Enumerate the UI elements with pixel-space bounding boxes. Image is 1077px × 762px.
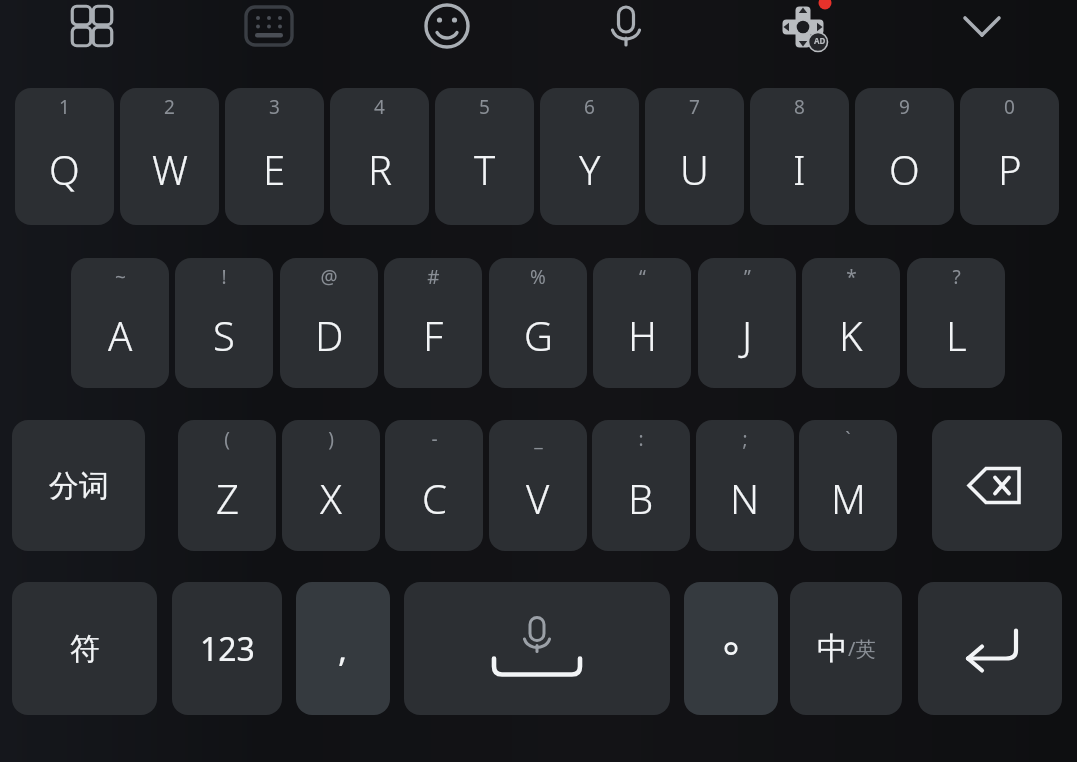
staticText: 5: [479, 94, 490, 120]
button[interactable]: ~: [71, 258, 169, 388]
staticText: Z: [216, 471, 239, 525]
staticText: L: [946, 308, 967, 362]
staticText: K: [839, 308, 863, 362]
staticText: 4: [374, 94, 385, 120]
button[interactable]: Keyboard menu: [64, 0, 120, 54]
button[interactable]: 1: [15, 88, 114, 225]
staticText: 2: [164, 94, 175, 120]
button[interactable]: Game pad: [775, 0, 831, 54]
staticText: S: [213, 308, 235, 362]
staticText: V: [526, 471, 550, 525]
button[interactable]: Hide keyboard: [954, 0, 1010, 54]
staticText: -: [431, 426, 438, 452]
button[interactable]: !: [175, 258, 273, 388]
button[interactable]: ?: [907, 258, 1005, 388]
button[interactable]: 分词: [12, 420, 145, 551]
button[interactable]: -: [385, 420, 483, 551]
button[interactable]: Switch keyboard: [241, 0, 297, 54]
button[interactable]: 2: [120, 88, 219, 225]
button[interactable]: `: [799, 420, 897, 551]
button[interactable]: %: [489, 258, 587, 388]
staticText: U: [680, 142, 709, 196]
button[interactable]: 3: [225, 88, 324, 225]
button[interactable]: 7: [645, 88, 744, 225]
button[interactable]: ,: [296, 582, 390, 715]
staticText: 7: [689, 94, 700, 120]
staticText: I: [793, 142, 806, 196]
staticText: B: [628, 471, 654, 525]
staticText: P: [998, 142, 1022, 196]
staticText: #: [427, 264, 440, 290]
staticText: 分词: [49, 467, 109, 505]
staticText: N: [730, 471, 760, 525]
staticText: E: [263, 142, 286, 196]
staticText: _: [534, 426, 543, 452]
button[interactable]: Chinese English toggle: [790, 582, 902, 715]
staticText: ”: [744, 264, 751, 290]
button[interactable]: ): [282, 420, 380, 551]
button[interactable]: Backspace: [932, 420, 1062, 551]
button[interactable]: 9: [855, 88, 954, 225]
staticText: `: [845, 426, 851, 452]
staticText: J: [742, 308, 753, 362]
button[interactable]: 4: [330, 88, 429, 225]
staticText: 0: [1004, 94, 1015, 120]
staticText: G: [524, 308, 553, 362]
staticText: 6: [584, 94, 595, 120]
staticText: :: [638, 426, 644, 452]
staticText: 符: [70, 630, 100, 668]
button[interactable]: ”: [698, 258, 796, 388]
button[interactable]: #: [384, 258, 482, 388]
button[interactable]: 123: [172, 582, 282, 715]
staticText: H: [628, 308, 657, 362]
staticText: M: [831, 471, 866, 525]
staticText: C: [422, 471, 447, 525]
button[interactable]: Emoji: [419, 0, 475, 54]
staticText: O: [889, 142, 920, 196]
button[interactable]: Space: [404, 582, 670, 715]
button[interactable]: 6: [540, 88, 639, 225]
staticText: D: [315, 308, 344, 362]
button[interactable]: 符: [12, 582, 157, 715]
staticText: ,: [338, 626, 348, 672]
staticText: T: [474, 142, 496, 196]
button[interactable]: (: [178, 420, 276, 551]
staticText: ?: [952, 264, 961, 290]
button[interactable]: 8: [750, 88, 849, 225]
staticText: “: [639, 264, 646, 290]
button[interactable]: Period: [684, 582, 778, 715]
staticText: 1: [59, 94, 70, 120]
staticText: W: [152, 142, 188, 196]
staticText: 3: [269, 94, 280, 120]
staticText: 8: [794, 94, 805, 120]
staticText: F: [423, 308, 444, 362]
staticText: AD: [814, 35, 826, 46]
button[interactable]: 0: [960, 88, 1059, 225]
staticText: ;: [742, 426, 748, 452]
staticText: Y: [579, 142, 601, 196]
staticText: ): [328, 426, 334, 452]
button[interactable]: ;: [696, 420, 794, 551]
staticText: 中: [817, 629, 848, 668]
staticText: /英: [848, 635, 876, 662]
staticText: !: [221, 264, 227, 290]
staticText: A: [108, 308, 133, 362]
button[interactable]: *: [802, 258, 900, 388]
button[interactable]: 5: [435, 88, 534, 225]
button[interactable]: Voice input: [598, 0, 654, 54]
button[interactable]: _: [489, 420, 587, 551]
staticText: %: [530, 264, 546, 290]
staticText: Q: [49, 142, 80, 196]
button[interactable]: Enter: [918, 582, 1062, 715]
staticText: ~: [115, 264, 126, 290]
button[interactable]: @: [280, 258, 378, 388]
staticText: (: [224, 426, 230, 452]
button[interactable]: “: [593, 258, 691, 388]
staticText: 9: [899, 94, 910, 120]
staticText: R: [368, 142, 392, 196]
staticText: *: [846, 264, 857, 290]
staticText: 123: [200, 627, 255, 671]
button[interactable]: :: [592, 420, 690, 551]
staticText: @: [320, 264, 338, 290]
staticText: X: [320, 471, 342, 525]
